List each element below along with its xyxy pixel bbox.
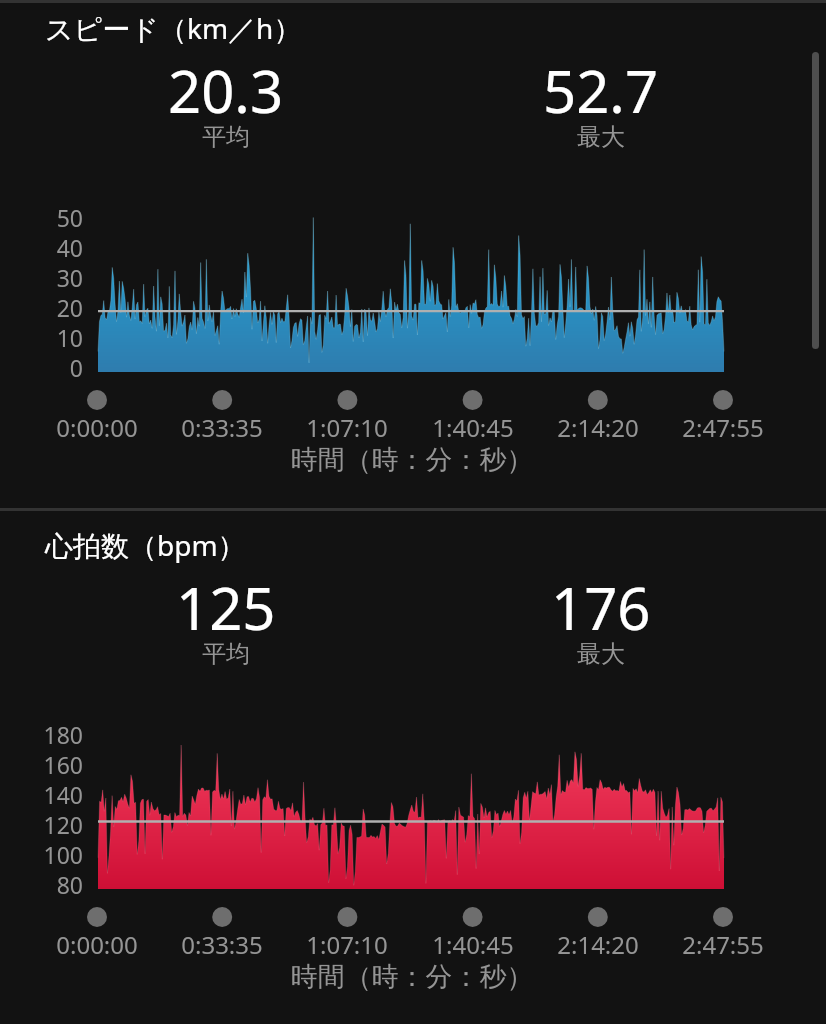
- button[interactable]: スピード グラフ: [0, 0, 826, 509]
- staticText: 1:40:45: [413, 411, 533, 444]
- staticText: スピード（km／h）: [45, 9, 302, 47]
- staticText: 176: [551, 568, 651, 647]
- staticText: 時間（時：分：秒）: [0, 443, 825, 477]
- staticText: 最大: [577, 639, 625, 669]
- staticText: 平均: [202, 639, 250, 669]
- staticText: 1:07:10: [287, 928, 407, 961]
- staticText: 2:14:20: [538, 411, 658, 444]
- staticText: 2:47:55: [663, 928, 783, 961]
- staticText: 50: [31, 202, 83, 233]
- staticText: 0:00:00: [37, 411, 157, 444]
- staticText: 20.3: [168, 51, 284, 130]
- staticText: 52.7: [543, 51, 659, 130]
- staticText: 100: [31, 839, 83, 870]
- staticText: 1:40:45: [413, 928, 533, 961]
- staticText: 160: [31, 749, 83, 780]
- staticText: 最大: [577, 122, 625, 152]
- staticText: 140: [31, 779, 83, 810]
- staticText: 30: [31, 262, 83, 293]
- staticText: 時間（時：分：秒）: [0, 960, 825, 994]
- staticText: 40: [31, 232, 83, 263]
- staticText: 1:07:10: [287, 411, 407, 444]
- staticText: 0:33:35: [162, 928, 282, 961]
- staticText: 120: [31, 809, 83, 840]
- staticText: 0:33:35: [162, 411, 282, 444]
- staticText: 2:47:55: [663, 411, 783, 444]
- staticText: 80: [31, 869, 83, 900]
- staticText: 0: [31, 352, 83, 383]
- staticText: 0:00:00: [37, 928, 157, 961]
- staticText: 125: [176, 568, 276, 647]
- staticText: 心拍数（bpm）: [45, 526, 246, 564]
- staticText: 20: [31, 292, 83, 323]
- staticText: 平均: [202, 122, 250, 152]
- staticText: 180: [31, 719, 83, 750]
- staticText: 10: [31, 322, 83, 353]
- button[interactable]: 心拍数 グラフ: [0, 517, 826, 1024]
- staticText: 2:14:20: [538, 928, 658, 961]
